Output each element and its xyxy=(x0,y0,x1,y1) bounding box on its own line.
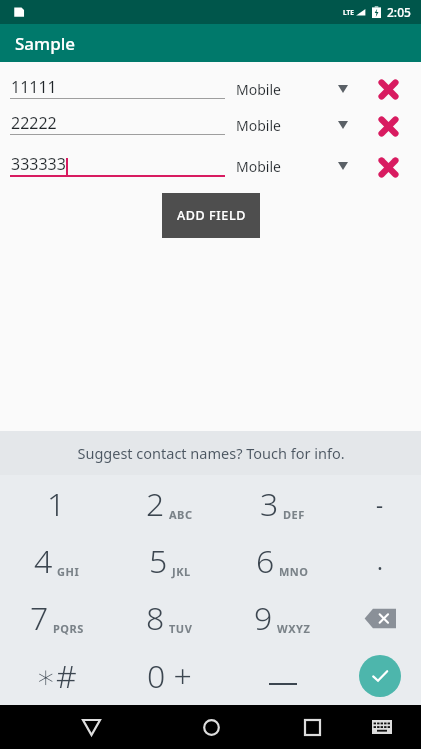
button[interactable]: Mobile xyxy=(236,112,356,138)
button[interactable]: 1 xyxy=(0,475,113,532)
button[interactable]: 0 + xyxy=(113,647,226,705)
staticText: Sample xyxy=(15,32,76,55)
staticText: DEF xyxy=(283,507,305,522)
staticText: 8 xyxy=(146,596,165,640)
button[interactable]: 22222 xyxy=(11,112,220,134)
button[interactable]: 9 xyxy=(226,589,339,647)
button[interactable]: Back xyxy=(70,706,112,748)
button[interactable]: Home xyxy=(190,706,232,748)
button[interactable]: . xyxy=(339,532,421,589)
staticText: 1 xyxy=(47,482,66,526)
staticText: Suggest contact names? Touch for info. xyxy=(77,443,345,463)
button[interactable]: Recents xyxy=(291,706,333,748)
staticText: 11111 xyxy=(11,76,57,98)
staticText: ADD FIELD xyxy=(177,207,246,224)
button[interactable]: ∗# xyxy=(0,647,113,705)
button[interactable]: 6 xyxy=(226,532,339,589)
staticText: 6 xyxy=(256,539,275,583)
staticText: 7 xyxy=(30,596,49,640)
button[interactable]: 8 xyxy=(113,589,226,647)
staticText: 2:05 xyxy=(387,4,411,20)
button[interactable]: Delete field xyxy=(371,76,405,103)
staticText: 3 xyxy=(260,482,279,526)
button[interactable]: 3 xyxy=(226,475,339,532)
button[interactable]: 4 xyxy=(0,532,113,589)
button[interactable]: 11111 xyxy=(11,76,220,98)
staticText: Mobile xyxy=(236,116,281,135)
staticText: Mobile xyxy=(236,157,281,176)
button[interactable]: Suggest contact names? Touch for info. xyxy=(0,431,421,475)
staticText: WXYZ xyxy=(277,621,311,636)
staticText: PQRS xyxy=(53,621,84,636)
button[interactable]: Delete field xyxy=(371,153,405,181)
button[interactable]: 5 xyxy=(113,532,226,589)
button[interactable]: Done xyxy=(339,647,421,705)
staticText: 5 xyxy=(149,539,168,583)
staticText: 333333 xyxy=(11,153,66,175)
button[interactable]: Backspace xyxy=(339,589,421,647)
staticText: 22222 xyxy=(11,112,57,134)
staticText: . xyxy=(377,546,383,576)
button[interactable]: 2 xyxy=(113,475,226,532)
button[interactable]: Mobile xyxy=(236,153,356,179)
button[interactable]: 7 xyxy=(0,589,113,647)
staticText: TUV xyxy=(169,621,193,636)
button[interactable]: Delete field xyxy=(371,112,405,140)
staticText: 0 + xyxy=(147,654,192,698)
button[interactable]: Space xyxy=(226,647,339,705)
button[interactable]: - xyxy=(339,475,421,532)
button[interactable]: 333333 xyxy=(11,153,220,175)
staticText: 9 xyxy=(254,596,273,640)
staticText: - xyxy=(376,489,384,519)
staticText: 2 xyxy=(146,482,165,526)
staticText: ABC xyxy=(169,507,193,522)
button[interactable]: Switch keyboard xyxy=(365,710,399,744)
staticText: GHI xyxy=(57,564,80,579)
staticText: LTE xyxy=(343,8,354,17)
staticText: JKL xyxy=(172,564,191,579)
button[interactable]: ADD FIELD xyxy=(162,193,260,238)
button[interactable]: Mobile xyxy=(236,76,356,102)
staticText: ∗# xyxy=(36,654,77,698)
staticText: MNO xyxy=(279,564,309,579)
staticText: Mobile xyxy=(236,80,281,99)
staticText: 4 xyxy=(34,539,53,583)
